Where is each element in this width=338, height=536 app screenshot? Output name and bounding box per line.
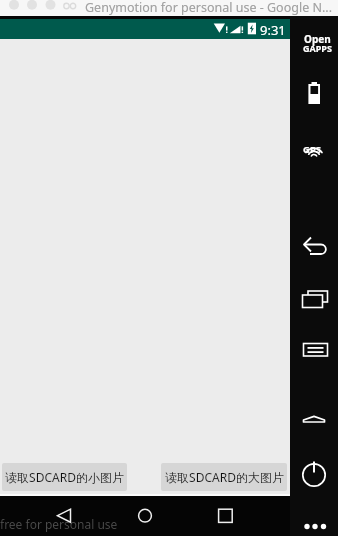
button[interactable]: Back — [290, 234, 338, 278]
button[interactable]: GPS — [290, 128, 338, 172]
staticText: Open — [304, 32, 331, 46]
button[interactable]: 读取SDCARD的小图片 — [2, 463, 127, 491]
button[interactable]: More options — [290, 488, 338, 532]
staticText: Genymotion for personal use - Google N..… — [85, 0, 332, 15]
button[interactable]: Home — [133, 496, 157, 536]
button[interactable]: Battery — [290, 76, 338, 120]
button[interactable]: Open GAPPS — [290, 26, 338, 62]
staticText: 9:31 — [260, 21, 286, 39]
button[interactable]: Menu — [290, 340, 338, 384]
staticText: 读取SDCARD的小图片 — [5, 469, 124, 485]
button[interactable]: Recent apps — [213, 496, 237, 536]
button[interactable]: Back — [52, 496, 76, 536]
button[interactable]: Power — [290, 437, 338, 481]
button[interactable]: Home — [290, 392, 338, 436]
staticText: GAPPS — [303, 42, 332, 54]
staticText: free for personal use — [0, 516, 118, 532]
button[interactable]: Recent apps — [290, 288, 338, 332]
staticText: 读取SDCARD的大图片 — [165, 469, 284, 485]
staticText: GPS — [303, 143, 322, 156]
button[interactable]: 读取SDCARD的大图片 — [161, 463, 287, 491]
